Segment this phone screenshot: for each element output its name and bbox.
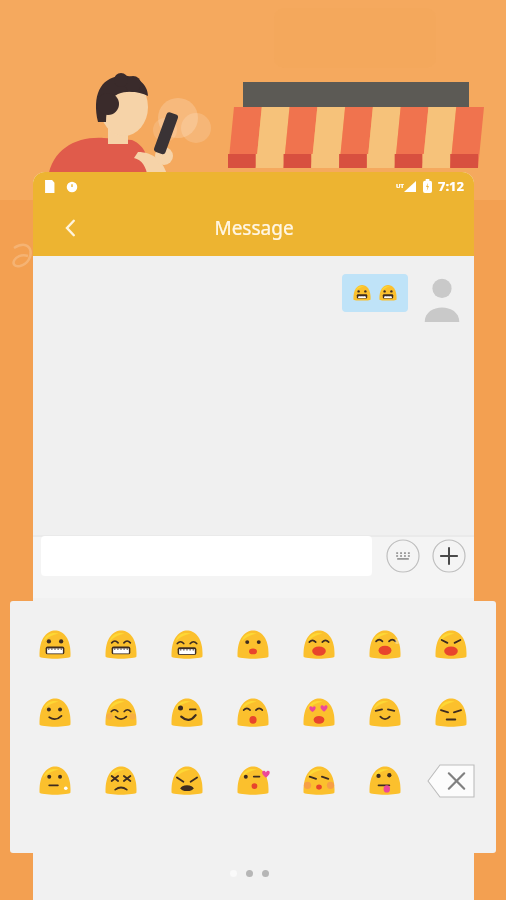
button[interactable] [246, 870, 253, 877]
button[interactable] [342, 274, 408, 312]
button[interactable]: Contact avatar [418, 274, 466, 322]
button[interactable]: Emoji 17 [154, 761, 220, 801]
button[interactable]: Emoji 13 [352, 693, 418, 733]
button[interactable]: Emoji 4 [220, 625, 286, 665]
button[interactable]: Emoji 1 [22, 625, 88, 665]
button[interactable]: Emoji 14 [418, 693, 484, 733]
button[interactable]: Emoji 15 [22, 761, 88, 801]
button[interactable]: Emoji 6 [352, 625, 418, 665]
button[interactable]: Emoji 20 [352, 761, 418, 801]
staticText: 7:12 [438, 177, 464, 195]
button[interactable]: Emoji 21 [418, 761, 484, 801]
button[interactable]: Emoji 16 [88, 761, 154, 801]
button[interactable]: Emoji 9 [88, 693, 154, 733]
button[interactable]: Emoji 3 [154, 625, 220, 665]
button[interactable]: Switch keyboard [386, 539, 420, 573]
button[interactable]: Emoji 11 [220, 693, 286, 733]
button[interactable]: Emoji 10 [154, 693, 220, 733]
button[interactable]: Add attachment [432, 539, 466, 573]
button[interactable]: Emoji 18 [220, 761, 286, 801]
button[interactable]: Emoji 12 [286, 693, 352, 733]
button[interactable]: Emoji 2 [88, 625, 154, 665]
button[interactable]: Emoji 5 [286, 625, 352, 665]
button[interactable]: Emoji 7 [418, 625, 484, 665]
button[interactable]: Back [53, 210, 89, 246]
staticText: Message [214, 215, 294, 241]
button[interactable] [262, 870, 269, 877]
staticText: UT [396, 182, 404, 190]
button[interactable]: Emoji 19 [286, 761, 352, 801]
button[interactable]: Emoji 8 [22, 693, 88, 733]
